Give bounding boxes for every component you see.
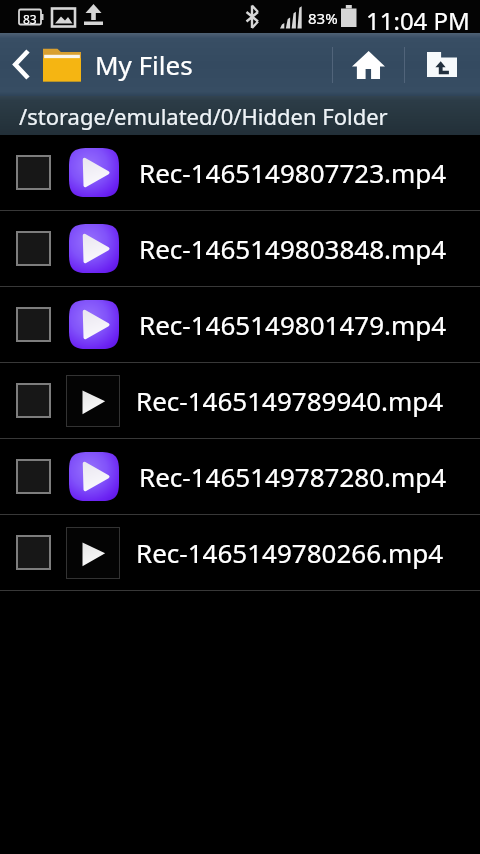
staticText: 11:04 PM <box>366 4 470 37</box>
staticText: Rec-1465149803848.mp4 <box>139 231 447 266</box>
button[interactable]: Select Rec-1465149789940.mp4 <box>0 363 480 439</box>
button[interactable]: Home <box>333 33 404 96</box>
button[interactable]: Select Rec-1465149807723.mp4 <box>16 155 51 190</box>
staticText: Rec-1465149780266.mp4 <box>136 535 444 570</box>
staticText: Rec-1465149801479.mp4 <box>139 307 447 342</box>
button[interactable]: Select Rec-1465149780266.mp4 <box>16 535 51 570</box>
staticText: 83 <box>23 11 37 27</box>
button[interactable]: Select Rec-1465149803848.mp4 <box>16 231 51 266</box>
button[interactable]: Select Rec-1465149787280.mp4 <box>0 439 480 515</box>
staticText: Rec-1465149787280.mp4 <box>139 459 447 494</box>
button[interactable]: Select Rec-1465149801479.mp4 <box>16 307 51 342</box>
button[interactable]: Select Rec-1465149789940.mp4 <box>16 383 51 418</box>
button[interactable]: Select Rec-1465149801479.mp4 <box>0 287 480 363</box>
button[interactable]: Select Rec-1465149807723.mp4 <box>0 135 480 211</box>
button[interactable]: Select Rec-1465149780266.mp4 <box>0 515 480 591</box>
button[interactable]: Back <box>0 33 40 96</box>
staticText: Rec-1465149789940.mp4 <box>136 383 444 418</box>
staticText: /storage/emulated/0/Hidden Folder <box>19 101 388 131</box>
button[interactable]: Select Rec-1465149787280.mp4 <box>16 459 51 494</box>
button[interactable]: Up one level <box>405 33 479 96</box>
button[interactable]: Select Rec-1465149803848.mp4 <box>0 211 480 287</box>
staticText: My Files <box>95 47 193 82</box>
staticText: Rec-1465149807723.mp4 <box>139 155 447 190</box>
staticText: 83% <box>308 8 338 28</box>
